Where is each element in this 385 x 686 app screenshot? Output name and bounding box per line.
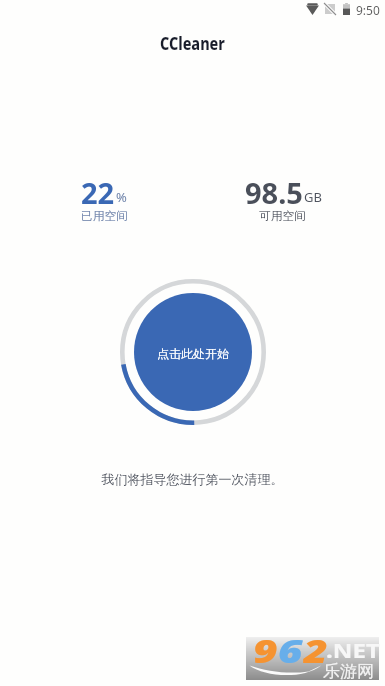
staticText: 我们将指导您进行第一次清理。 <box>0 471 385 487</box>
staticText: 22 <box>81 173 115 212</box>
other: Battery <box>343 3 350 15</box>
staticText: 9 <box>253 629 278 672</box>
staticText: % <box>116 188 127 206</box>
staticText: 2 <box>303 629 328 672</box>
staticText: 98.5 <box>245 173 303 212</box>
staticText: 已用空间 <box>81 209 128 224</box>
button[interactable]: 点击此处开始 <box>134 293 252 411</box>
staticText: 点击此处开始 <box>157 346 229 361</box>
staticText: 6 <box>278 629 303 672</box>
staticText: .NET <box>326 638 381 664</box>
staticText: 9:50 <box>356 2 380 18</box>
staticText: 乐游网 <box>323 661 374 682</box>
staticText: 可用空间 <box>259 209 306 224</box>
other: No SIM <box>325 4 335 14</box>
staticText: CCleaner <box>160 32 225 55</box>
staticText: GB <box>304 188 322 206</box>
other: Wi-Fi <box>305 4 320 15</box>
